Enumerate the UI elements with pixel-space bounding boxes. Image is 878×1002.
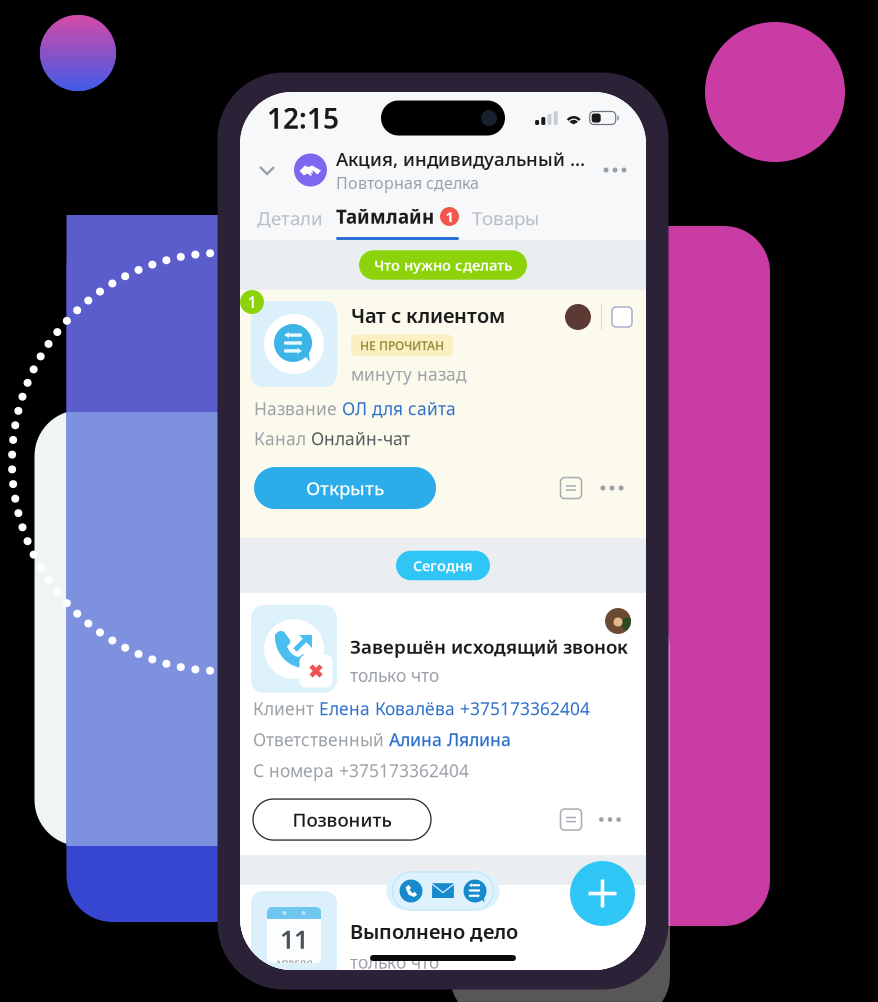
staticText: Детали [257, 206, 323, 230]
button[interactable]: Add note [560, 809, 582, 831]
button[interactable]: More options [596, 155, 634, 185]
staticText: Канал [254, 427, 306, 450]
button[interactable]: Детали [257, 196, 323, 240]
staticText: минуту назад [351, 362, 467, 385]
staticText: только что [350, 664, 439, 687]
button[interactable]: Открыть [254, 467, 436, 509]
staticText: Название [254, 397, 337, 420]
button[interactable]: Deal [294, 153, 327, 186]
button[interactable]: Email [431, 879, 454, 902]
staticText: Елена Ковалёва +375173362404 [319, 697, 590, 720]
staticText: С номера +375173362404 [253, 759, 469, 782]
staticText: Товары [472, 206, 539, 230]
staticText: Алина Лялина [389, 728, 511, 751]
staticText: Что нужно сделать [374, 255, 512, 275]
staticText: НЕ ПРОЧИТАН [360, 338, 444, 353]
staticText: Таймлайн [336, 204, 434, 229]
staticText: Повторная сделка [336, 172, 479, 193]
staticText: 1 [247, 291, 256, 313]
staticText: 11 [280, 922, 308, 956]
staticText: Чат с клиентом [351, 302, 505, 329]
staticText: Позвонить [292, 807, 391, 832]
button[interactable]: Позвонить [253, 799, 431, 840]
staticText: ОЛ для сайта [342, 397, 456, 420]
button[interactable]: More [590, 808, 630, 832]
staticText: 1 [445, 207, 453, 226]
button[interactable]: Create [570, 861, 635, 926]
button[interactable]: Collapse [252, 155, 282, 185]
staticText: Сегодня [413, 556, 473, 575]
staticText: Онлайн-чат [311, 427, 410, 450]
staticText: Клиент [253, 697, 314, 720]
staticText: АПРЕЛЯ [275, 958, 312, 970]
button[interactable]: More [592, 476, 632, 500]
staticText: Ответственный [253, 728, 384, 751]
button[interactable]: Таймлайн [336, 196, 459, 240]
button[interactable]: Complete task [612, 307, 632, 327]
staticText: 12:15 [267, 99, 339, 137]
button[interactable]: Add note [560, 477, 582, 499]
staticText: Акция, индивидуальный за… [336, 146, 592, 171]
button[interactable]: Chat [463, 879, 486, 902]
button[interactable]: Call [399, 879, 422, 902]
staticText: Завершён исходящий звонок [350, 634, 628, 659]
button[interactable]: Товары [472, 196, 539, 240]
staticText: Выполнено дело [350, 918, 518, 945]
staticText: Открыть [306, 476, 384, 500]
staticText: только что [350, 951, 439, 974]
